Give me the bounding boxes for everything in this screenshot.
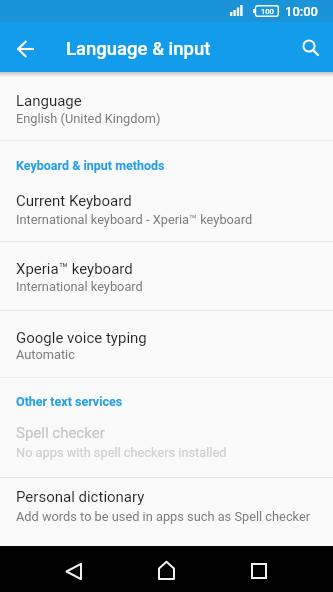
staticText: English (United Kingdom) [16,111,161,126]
button[interactable]: Current Keyboard [0,177,333,241]
button[interactable] [289,26,333,70]
staticText: International keyboard - Xperia™ keyboar… [16,212,253,227]
staticText: Personal dictionary [16,488,145,506]
staticText: Google voice typing [16,329,147,347]
staticText: International keyboard [16,279,143,294]
button[interactable] [237,549,281,592]
button[interactable]: Personal dictionary [0,478,333,546]
button[interactable]: Spell checker [0,412,333,477]
staticText: Add words to be used in apps such as Spe… [16,509,311,524]
staticText: Other text services [16,394,123,409]
staticText: Spell checker [16,424,105,442]
button[interactable]: Xperia™ keyboard [0,242,333,310]
button[interactable]: Language [0,72,333,140]
staticText: No apps with spell checkers installed [16,445,227,460]
button[interactable] [52,549,96,592]
staticText: Keyboard & input methods [16,158,165,173]
button[interactable]: Google voice typing [0,311,333,377]
staticText: Xperia™ keyboard [16,260,133,278]
staticText: Language [16,92,82,110]
button[interactable] [144,548,188,592]
staticText: Automatic [16,347,75,362]
staticText: Language & input [66,38,211,60]
staticText: 100 [261,7,274,16]
staticText: Current Keyboard [16,192,132,210]
staticText: 10:00 [285,4,319,19]
button[interactable] [3,27,47,71]
